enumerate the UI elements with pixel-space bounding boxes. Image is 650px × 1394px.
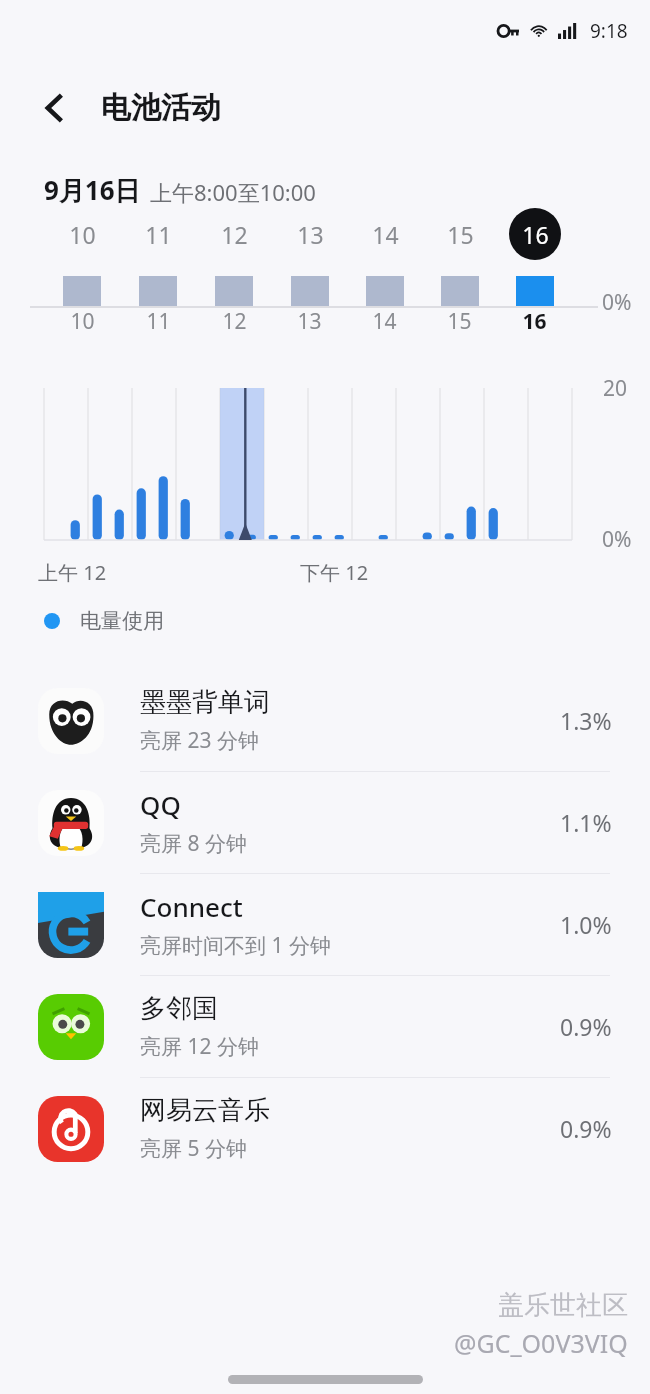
- staticText: 下午 12: [300, 559, 369, 586]
- staticText: 亮屏 8 分钟: [140, 829, 247, 858]
- button[interactable]: Connect: [0, 874, 650, 975]
- staticText: 9:18: [590, 18, 628, 44]
- button[interactable]: 网易云音乐: [0, 1078, 650, 1179]
- button[interactable]: 13: [284, 208, 336, 260]
- staticText: 0%: [602, 288, 632, 317]
- staticText: 16: [522, 219, 549, 250]
- staticText: 多邻国: [140, 992, 218, 1025]
- staticText: 10: [69, 219, 96, 250]
- staticText: 电池活动: [101, 89, 221, 127]
- staticText: 0.9%: [560, 1011, 612, 1042]
- button[interactable]: 墨墨背单词: [0, 670, 650, 771]
- staticText: 20: [603, 374, 628, 403]
- staticText: 9月16日: [44, 172, 141, 208]
- staticText: 墨墨背单词: [140, 686, 270, 719]
- staticText: 14: [372, 307, 397, 336]
- staticText: 1.1%: [560, 807, 612, 838]
- staticText: 11: [145, 219, 172, 250]
- staticText: 电量使用: [80, 608, 164, 634]
- button[interactable]: 多邻国: [0, 976, 650, 1077]
- button[interactable]: 11: [132, 208, 184, 260]
- staticText: 14: [372, 219, 399, 250]
- staticText: 亮屏 12 分钟: [140, 1032, 259, 1061]
- button[interactable]: 12: [208, 208, 260, 260]
- button[interactable]: 14: [359, 208, 411, 260]
- staticText: 0%: [602, 525, 632, 554]
- staticText: 12: [222, 307, 247, 336]
- staticText: 盖乐世社区: [498, 1289, 628, 1322]
- staticText: @GC_O0V3VIQ: [454, 1326, 628, 1360]
- staticText: 网易云音乐: [140, 1094, 270, 1127]
- button[interactable]: QQ: [0, 772, 650, 873]
- staticText: 上午8:00至10:00: [150, 177, 316, 207]
- staticText: 1.3%: [560, 705, 612, 736]
- button[interactable]: Back: [32, 85, 78, 131]
- staticText: 上午 12: [38, 559, 107, 586]
- staticText: 1.0%: [560, 909, 612, 940]
- staticText: 15: [447, 219, 474, 250]
- staticText: 13: [297, 219, 324, 250]
- staticText: 11: [146, 307, 171, 336]
- staticText: 13: [297, 307, 322, 336]
- staticText: 亮屏 5 分钟: [140, 1134, 247, 1163]
- button[interactable]: 15: [434, 208, 486, 260]
- staticText: Connect: [140, 889, 243, 924]
- staticText: 0.9%: [560, 1113, 612, 1144]
- button[interactable]: 10: [56, 208, 108, 260]
- button[interactable]: 16: [509, 208, 561, 260]
- staticText: 亮屏 23 分钟: [140, 726, 259, 755]
- staticText: 15: [447, 307, 472, 336]
- staticText: 12: [221, 219, 248, 250]
- staticText: 10: [70, 307, 95, 336]
- staticText: 亮屏时间不到 1 分钟: [140, 931, 331, 960]
- staticText: 16: [522, 307, 547, 336]
- staticText: QQ: [140, 787, 181, 822]
